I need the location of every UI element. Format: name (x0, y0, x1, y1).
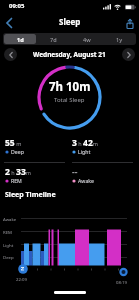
staticText: Sleep Timeline (5, 190, 56, 200)
staticText: -- (72, 166, 78, 178)
staticText: 3 h 42m (72, 137, 98, 149)
button[interactable] (123, 17, 136, 30)
staticText: REM (11, 177, 22, 184)
button[interactable]: 7d (37, 33, 70, 45)
staticText: 08:19 (116, 279, 127, 285)
staticText: 4w (83, 36, 91, 43)
staticText: 1d (17, 36, 24, 43)
staticText: 09:05 (9, 2, 25, 10)
staticText: 7h 10m (49, 79, 91, 95)
button[interactable]: 1y (103, 33, 136, 45)
staticText: Total Sleep (54, 96, 85, 104)
staticText: 2 h 33m (5, 166, 31, 178)
staticText: Awake (78, 177, 94, 184)
button[interactable] (122, 48, 135, 61)
button[interactable] (4, 48, 17, 61)
staticText: Deep (11, 148, 24, 155)
button[interactable] (2, 16, 16, 30)
staticText: REM (3, 229, 12, 235)
button[interactable]: 55 m (5, 137, 24, 149)
staticText: Awake (3, 216, 17, 222)
button[interactable]: -- (72, 166, 94, 178)
staticText: Light (3, 242, 14, 248)
button[interactable]: 3 h 42m (72, 137, 98, 149)
staticText: Wednesday, August 21 (33, 50, 106, 59)
staticText: Deep (3, 254, 14, 260)
staticText: 1y (116, 36, 123, 43)
button[interactable]: 1d (3, 33, 37, 45)
staticText: 55 m (5, 137, 22, 149)
button[interactable]: 4w (70, 33, 103, 45)
button[interactable]: 2 h 33m (5, 166, 31, 178)
staticText: 7d (50, 36, 57, 43)
staticText: Light (78, 148, 91, 155)
staticText: Sleep (59, 16, 81, 27)
staticText: 22:09 (16, 276, 27, 282)
